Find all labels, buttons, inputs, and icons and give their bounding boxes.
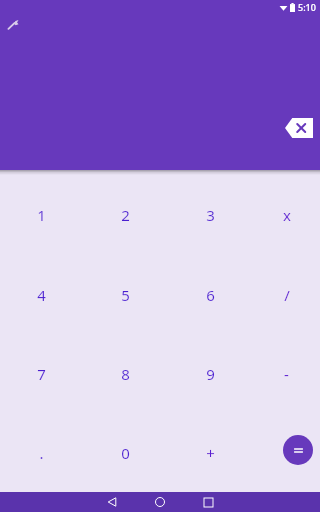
staticText: / <box>284 285 290 305</box>
staticText: 0 <box>121 443 130 463</box>
button[interactable]: 7 <box>0 334 82 413</box>
button[interactable]: + <box>168 413 253 492</box>
button[interactable]: - <box>253 334 320 413</box>
staticText: 7 <box>37 364 46 384</box>
button[interactable]: 2 <box>82 175 168 255</box>
staticText: 6 <box>206 285 215 305</box>
staticText: 8 <box>121 364 130 384</box>
button[interactable]: 4 <box>0 255 82 334</box>
button[interactable]: 8 <box>82 334 168 413</box>
button[interactable]: 0 <box>82 413 168 492</box>
button[interactable]: Recent apps <box>196 492 220 512</box>
button[interactable]: 1 <box>0 175 82 255</box>
button[interactable]: / <box>253 255 320 334</box>
staticText: - <box>284 364 289 384</box>
button[interactable]: 5 <box>82 255 168 334</box>
button[interactable]: Back <box>100 492 124 512</box>
staticText: 5 <box>121 285 130 305</box>
staticText: 3 <box>206 205 215 225</box>
button[interactable]: 3 <box>168 175 253 255</box>
button[interactable]: Equals <box>283 435 313 465</box>
button[interactable]: x <box>253 175 320 255</box>
button[interactable]: Home <box>148 492 172 512</box>
button[interactable] <box>253 413 320 492</box>
staticText: 2 <box>121 205 130 225</box>
staticText: + <box>206 443 215 463</box>
staticText: . <box>39 443 44 463</box>
button[interactable]: 6 <box>168 255 253 334</box>
button[interactable]: Settings <box>4 16 22 34</box>
button[interactable]: Delete <box>285 118 313 138</box>
staticText: 1 <box>37 205 46 225</box>
staticText: 9 <box>206 364 215 384</box>
staticText: 5:10 <box>298 1 316 13</box>
staticText: 4 <box>37 285 46 305</box>
button[interactable]: 9 <box>168 334 253 413</box>
staticText: x <box>283 205 291 225</box>
